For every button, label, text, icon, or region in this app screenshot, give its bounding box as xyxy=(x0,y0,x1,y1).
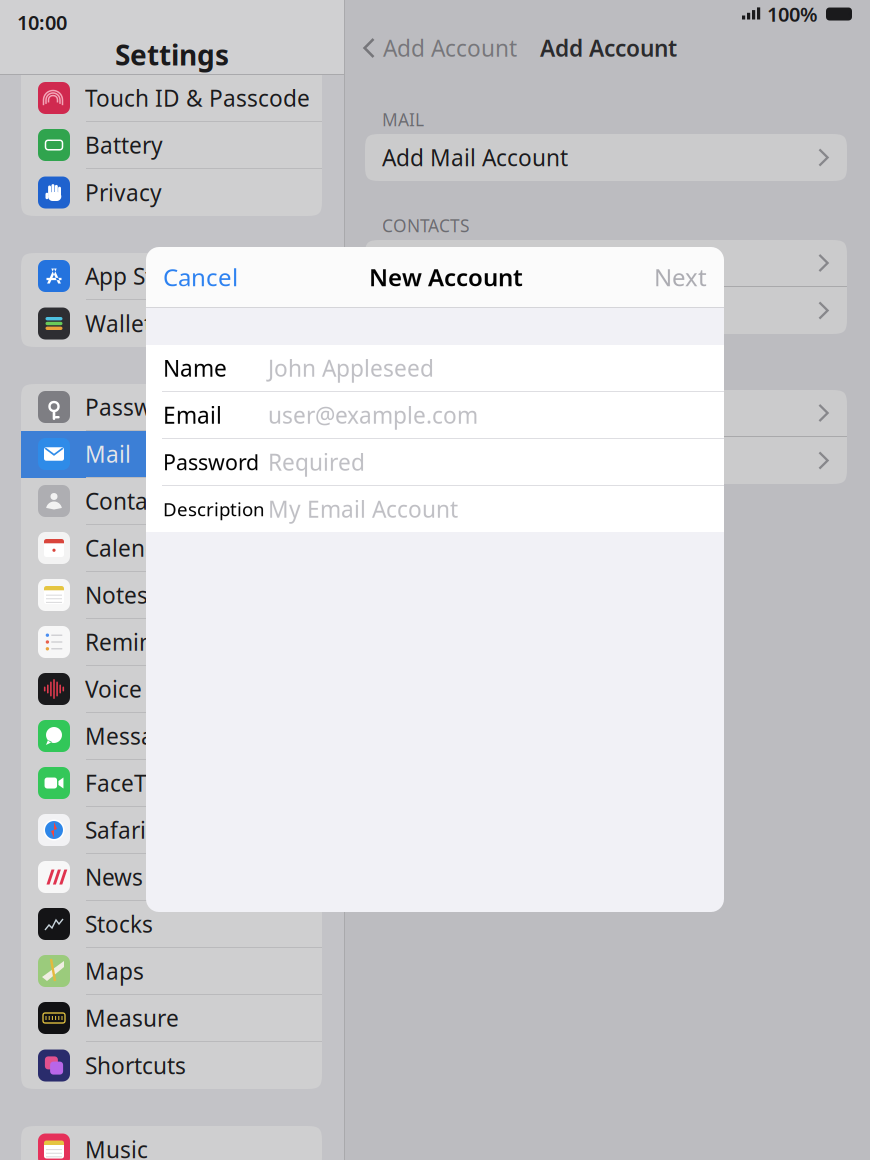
staticText: Cancel xyxy=(163,261,238,293)
button[interactable]: Wallet & Apple Pay xyxy=(21,300,322,347)
button[interactable]: Reminders xyxy=(21,619,322,666)
staticText: Next xyxy=(654,261,707,293)
button[interactable]: Shortcuts xyxy=(21,1042,322,1089)
staticText: Email xyxy=(163,400,222,430)
staticText: FaceTime xyxy=(85,768,187,798)
staticText: Wallet & Apple Pay xyxy=(85,308,287,338)
staticText: Measure xyxy=(85,1003,179,1033)
button[interactable]: Maps xyxy=(21,948,322,995)
staticText: John Appleseed xyxy=(268,353,434,383)
staticText: News xyxy=(85,862,143,892)
button[interactable]: Add Account xyxy=(345,26,517,70)
staticText: Add Account xyxy=(540,33,677,63)
staticText: Required xyxy=(268,447,365,477)
staticText: CONTACTS xyxy=(382,214,470,237)
staticText: Password xyxy=(163,448,259,476)
staticText: Battery xyxy=(85,130,163,160)
staticText: Name xyxy=(163,353,227,383)
button[interactable]: Screen Time xyxy=(21,28,322,75)
button[interactable]: Next xyxy=(644,247,724,307)
button[interactable]: Mail xyxy=(21,431,322,478)
button[interactable]: Cancel xyxy=(146,247,248,307)
button[interactable]: Stocks xyxy=(21,901,322,948)
button[interactable]: Battery xyxy=(21,122,322,169)
staticText: Voice Memos xyxy=(85,674,228,704)
staticText: Calendar xyxy=(85,533,181,563)
staticText: Maps xyxy=(85,956,144,986)
button[interactable]: Passwords xyxy=(21,384,322,431)
staticText: Stocks xyxy=(85,909,153,939)
button[interactable]: Account xyxy=(365,390,847,437)
button[interactable]: Music xyxy=(21,1126,322,1160)
button[interactable]: FaceTime xyxy=(21,760,322,807)
button[interactable]: Contacts xyxy=(21,478,322,525)
staticText: Privacy xyxy=(85,177,162,207)
staticText: My Email Account xyxy=(268,494,458,524)
staticText: Mail xyxy=(85,439,131,469)
button[interactable]: Add Mail Account xyxy=(365,134,847,181)
staticText: MAIL xyxy=(382,108,424,131)
button[interactable]: Messages xyxy=(21,713,322,760)
staticText: Music xyxy=(85,1134,148,1160)
button[interactable]: Account xyxy=(365,240,847,287)
button[interactable]: Notes xyxy=(21,572,322,619)
button[interactable]: Touch ID & Passcode xyxy=(21,75,322,122)
staticText: Description xyxy=(163,497,265,521)
staticText: 100% xyxy=(767,1,818,27)
staticText: Passwords xyxy=(85,392,200,422)
staticText: App Store xyxy=(85,261,189,291)
button[interactable]: Calendar xyxy=(21,525,322,572)
staticText: Settings xyxy=(115,36,229,73)
staticText: 10:00 xyxy=(17,9,67,36)
staticText: Screen Time xyxy=(85,36,216,66)
staticText: Notes xyxy=(85,580,148,610)
staticText: Touch ID & Passcode xyxy=(85,83,310,113)
staticText: Contacts xyxy=(85,486,178,516)
staticText: Add Mail Account xyxy=(382,142,568,172)
staticText: Shortcuts xyxy=(85,1050,186,1080)
staticText: Messages xyxy=(85,721,192,751)
button[interactable]: Account xyxy=(365,287,847,334)
staticText: user@example.com xyxy=(268,400,478,430)
staticText: New Account xyxy=(369,261,523,293)
button[interactable]: Voice Memos xyxy=(21,666,322,713)
staticText: Safari xyxy=(85,815,146,845)
staticText: Add Account xyxy=(383,33,517,63)
button[interactable]: Measure xyxy=(21,995,322,1042)
button[interactable]: Safari xyxy=(21,807,322,854)
button[interactable]: Email xyxy=(146,392,724,438)
button[interactable]: Password xyxy=(146,439,724,485)
button[interactable]: App Store xyxy=(21,253,322,300)
staticText: Reminders xyxy=(85,627,200,657)
button[interactable]: News xyxy=(21,854,322,901)
button[interactable]: Account xyxy=(365,437,847,484)
button[interactable]: Privacy xyxy=(21,169,322,216)
button[interactable]: Name xyxy=(146,345,724,391)
button[interactable]: Description xyxy=(146,486,724,532)
